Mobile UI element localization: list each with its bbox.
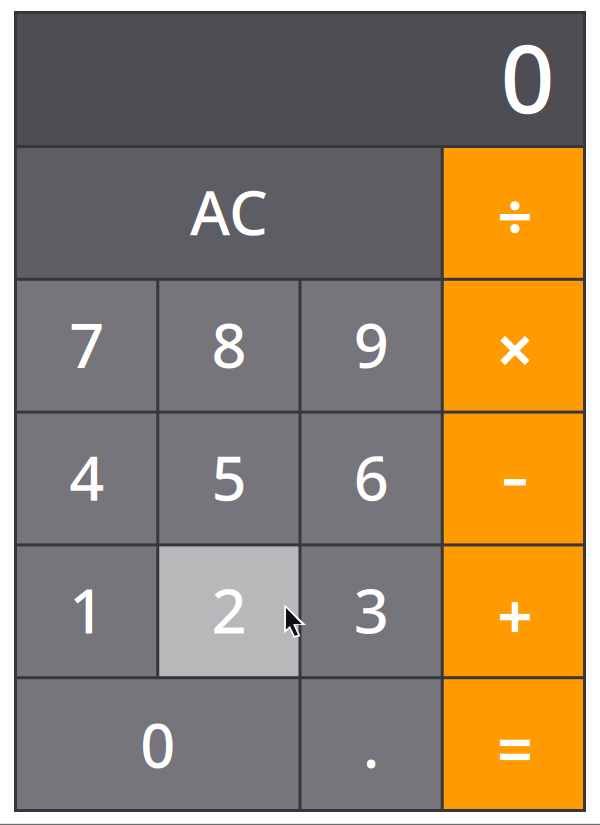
button[interactable]: Divide — [444, 148, 583, 278]
button[interactable]: Equals — [444, 679, 583, 809]
staticText: . — [363, 703, 380, 785]
button[interactable]: Subtract — [444, 414, 583, 543]
button[interactable]: 4 — [17, 414, 156, 543]
staticText: 4 — [69, 436, 104, 518]
staticText: AC — [190, 171, 268, 252]
staticText: 0 — [140, 703, 175, 785]
staticText: 5 — [211, 436, 246, 518]
button[interactable]: 6 — [301, 414, 441, 543]
staticText: 8 — [211, 303, 246, 385]
staticText: 0 — [500, 14, 554, 139]
staticText: 6 — [354, 436, 389, 518]
staticText: 9 — [354, 303, 389, 385]
staticText: 1 — [69, 569, 104, 650]
button[interactable]: . — [301, 679, 441, 809]
button[interactable]: 0 — [17, 679, 298, 809]
button[interactable]: 7 — [17, 281, 156, 411]
button[interactable]: AC — [17, 148, 441, 278]
button[interactable]: 5 — [159, 414, 298, 543]
staticText: 3 — [354, 569, 389, 650]
staticText: 2 — [211, 569, 246, 650]
button[interactable]: Add — [444, 546, 583, 676]
button[interactable]: 3 — [301, 546, 441, 676]
staticText: 7 — [69, 303, 104, 385]
button[interactable]: 9 — [301, 281, 441, 411]
button[interactable]: 2 — [159, 546, 298, 676]
button[interactable]: Multiply — [444, 281, 583, 411]
button[interactable]: 1 — [17, 546, 156, 676]
button[interactable]: 8 — [159, 281, 298, 411]
